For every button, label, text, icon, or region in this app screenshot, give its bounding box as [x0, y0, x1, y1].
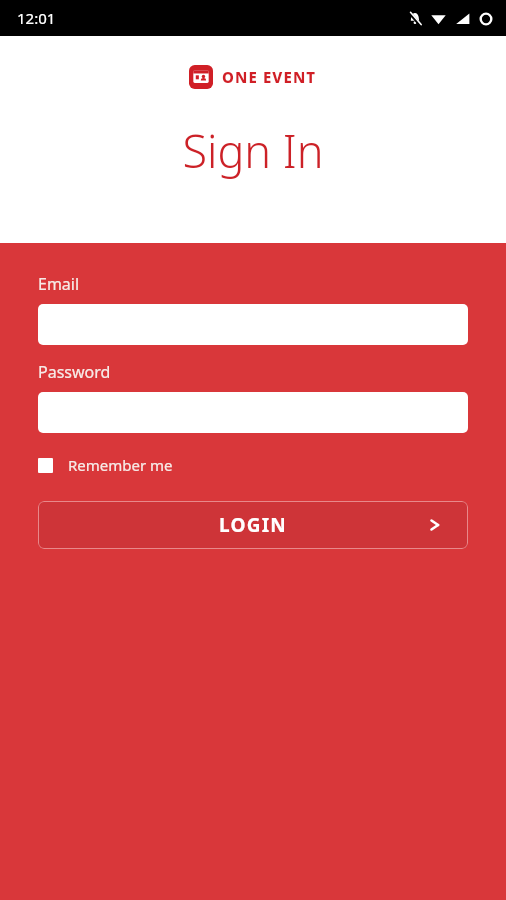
staticText: Password: [38, 361, 111, 383]
staticText: LOGIN: [219, 512, 287, 538]
staticText: Remember me: [68, 455, 173, 475]
staticText: 12:01: [17, 8, 56, 28]
button[interactable]: LOGIN: [38, 501, 468, 549]
button[interactable]: Remember me: [38, 453, 173, 477]
staticText: Sign In: [182, 120, 324, 181]
staticText: ONE EVENT: [222, 67, 317, 87]
button[interactable]: Text input field: [38, 392, 468, 433]
staticText: Email: [38, 273, 80, 295]
button[interactable]: Text input field: [38, 304, 468, 345]
